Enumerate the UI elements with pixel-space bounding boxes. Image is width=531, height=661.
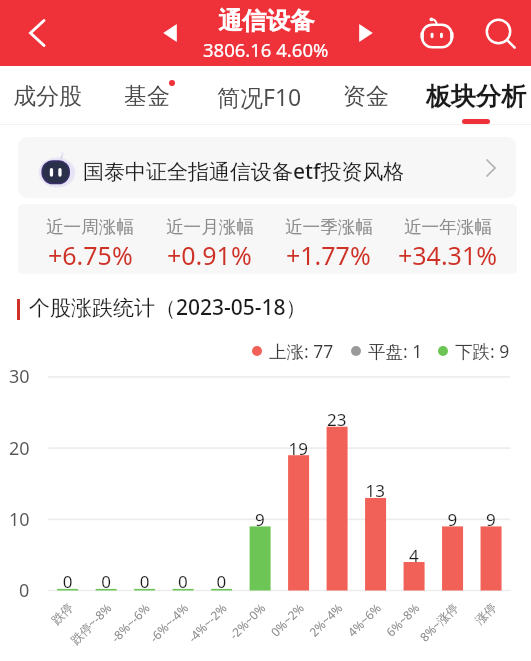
button[interactable]: 成分股	[0, 66, 102, 125]
staticText: 上涨: 77	[269, 339, 334, 363]
button[interactable]: 下跌: 9	[438, 339, 510, 363]
staticText: +0.91%	[167, 238, 252, 272]
staticText: 下跌: 9	[455, 339, 510, 363]
button[interactable]: 上涨: 77	[252, 339, 334, 363]
staticText: 成分股	[13, 82, 82, 111]
button[interactable]: Previous sector	[155, 18, 185, 48]
staticText: 平盘: 1	[368, 339, 423, 363]
staticText: 个股涨跌统计（2023-05-18）	[29, 293, 307, 322]
button[interactable]: 平盘: 1	[351, 339, 423, 363]
button[interactable]: Search	[479, 13, 519, 53]
staticText: 资金	[343, 82, 389, 111]
button[interactable]: Back	[17, 13, 57, 53]
staticText: 近一周涨幅	[46, 216, 134, 238]
staticText: 近一年涨幅	[404, 216, 492, 238]
button[interactable]: 基金	[92, 66, 202, 125]
staticText: 国泰中证全指通信设备etf投资风格	[83, 157, 405, 186]
staticText: 近一季涨幅	[285, 216, 373, 238]
staticText: 板块分析	[426, 81, 526, 112]
button[interactable]: AI assistant	[417, 13, 457, 53]
staticText: 近一月涨幅	[166, 216, 254, 238]
staticText: 3806.16 4.60%	[203, 37, 329, 62]
button[interactable]: Next sector	[351, 18, 381, 48]
staticText: 基金	[124, 82, 170, 111]
staticText: 通信设备	[218, 6, 314, 36]
button[interactable]: 板块分析	[421, 66, 531, 125]
button[interactable]: 简况F10	[204, 66, 314, 125]
button[interactable]: 国泰中证全指通信设备etf投资风格	[18, 137, 516, 198]
staticText: 简况F10	[217, 81, 302, 112]
staticText: +6.75%	[48, 238, 133, 272]
staticText: +1.77%	[286, 238, 371, 272]
button[interactable]: 资金	[311, 66, 421, 125]
staticText: +34.31%	[398, 238, 497, 272]
